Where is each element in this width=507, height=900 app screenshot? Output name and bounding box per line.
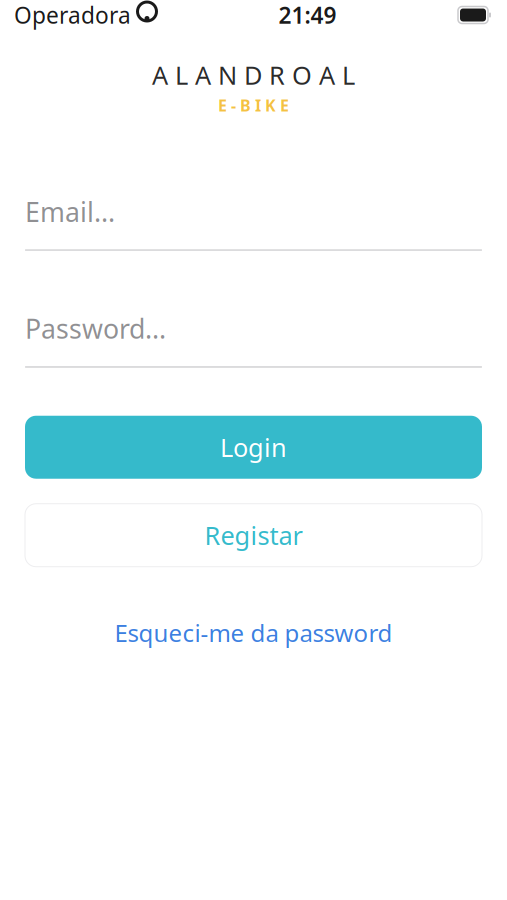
button[interactable]: Login <box>25 416 482 479</box>
staticText: 21:49 <box>278 0 336 30</box>
button[interactable]: Esqueci-me da password <box>98 609 408 657</box>
staticText: Email... <box>25 194 115 229</box>
button[interactable]: Registar <box>25 504 482 567</box>
staticText: E - B I K E <box>218 95 289 116</box>
staticText: A L A N D R O A L <box>152 58 355 92</box>
staticText: Registar <box>204 518 302 552</box>
staticText: Esqueci-me da password <box>114 617 392 649</box>
staticText: Login <box>220 430 287 464</box>
staticText: Operadora <box>14 0 131 30</box>
staticText: Password... <box>25 311 166 346</box>
